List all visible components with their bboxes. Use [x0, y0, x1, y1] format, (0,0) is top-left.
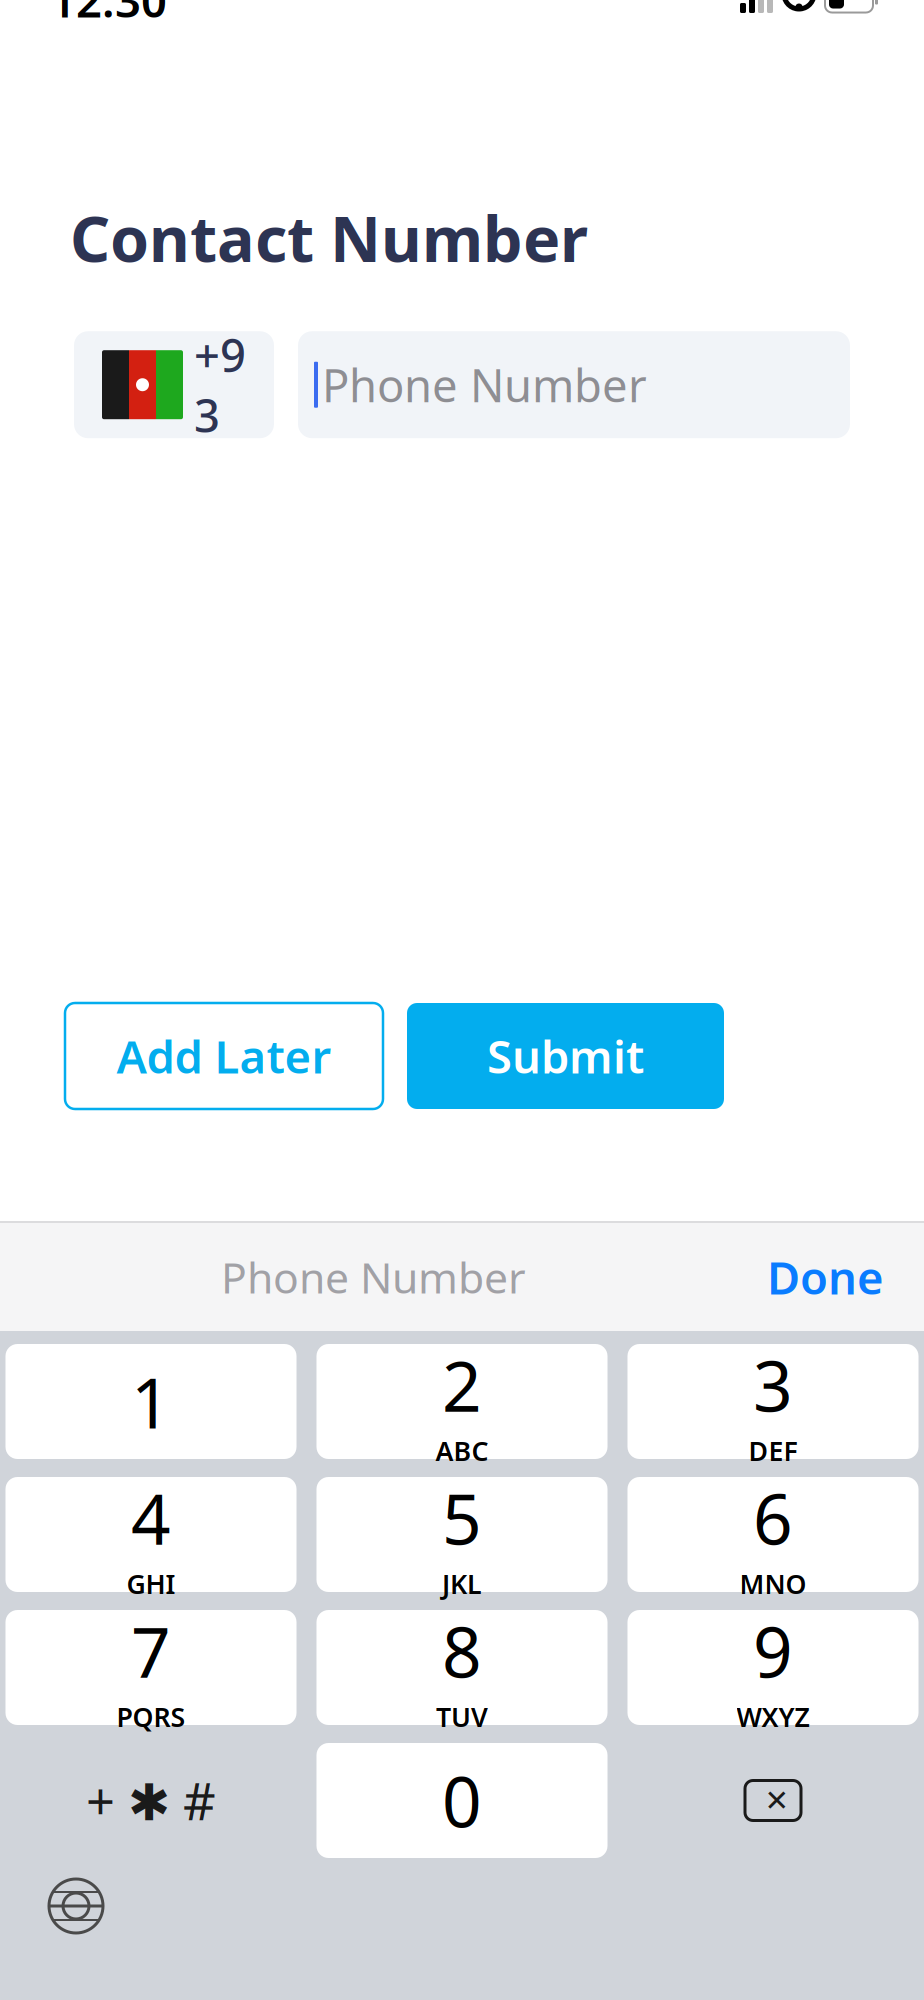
staticText: TUV: [436, 1699, 488, 1734]
button[interactable]: Add Later: [65, 1003, 383, 1109]
button[interactable]: Done: [747, 1233, 904, 1321]
button[interactable]: 6: [627, 1477, 918, 1592]
staticText: ✕: [764, 1784, 789, 1817]
staticText: Done: [767, 1247, 884, 1307]
staticText: 9: [753, 1605, 793, 1697]
staticText: 12:30: [50, 0, 167, 30]
button[interactable]: 9: [627, 1610, 918, 1725]
button[interactable]: 3: [627, 1344, 918, 1459]
button[interactable]: Submit: [407, 1003, 724, 1109]
staticText: 8: [442, 1605, 482, 1697]
button[interactable]: 5: [316, 1477, 607, 1592]
staticText: Phone Number: [322, 355, 647, 415]
staticText: ABC: [435, 1433, 488, 1468]
staticText: WXYZ: [736, 1699, 809, 1734]
button[interactable]: 4: [5, 1477, 296, 1592]
staticText: Add Later: [116, 1026, 331, 1086]
staticText: PQRS: [116, 1699, 185, 1734]
button[interactable]: Delete: [627, 1743, 918, 1858]
button[interactable]: Change keyboard: [0, 1860, 132, 1952]
staticText: 5: [442, 1472, 482, 1564]
button[interactable]: 7: [5, 1610, 296, 1725]
staticText: +93: [194, 324, 246, 445]
button[interactable]: Phone Number: [298, 331, 850, 438]
staticText: DEF: [748, 1433, 797, 1468]
button[interactable]: 2: [316, 1344, 607, 1459]
staticText: 2: [442, 1339, 482, 1431]
staticText: 6: [753, 1472, 793, 1564]
staticText: 4: [131, 1472, 171, 1564]
staticText: 1: [131, 1355, 171, 1448]
button[interactable]: 1: [5, 1344, 296, 1459]
staticText: 3: [753, 1339, 793, 1431]
staticText: JKL: [442, 1566, 482, 1601]
staticText: 0: [442, 1754, 482, 1847]
staticText: Contact Number: [70, 196, 588, 279]
button[interactable]: 8: [316, 1610, 607, 1725]
staticText: MNO: [739, 1566, 806, 1601]
button[interactable]: +93: [74, 331, 274, 438]
staticText: Phone Number: [221, 1249, 526, 1305]
staticText: GHI: [126, 1566, 175, 1601]
staticText: 7: [131, 1605, 171, 1697]
staticText: Submit: [487, 1026, 644, 1086]
button[interactable]: Plus star pound: [5, 1743, 296, 1858]
staticText: + ✱ #: [86, 1767, 216, 1834]
button[interactable]: 0: [316, 1743, 607, 1858]
